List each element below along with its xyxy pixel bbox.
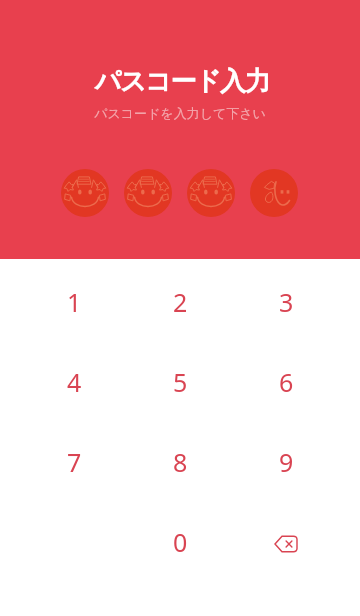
staticText: パスコードを入力して下さい xyxy=(0,105,360,121)
button[interactable]: 1 xyxy=(34,262,114,342)
staticText: 5 xyxy=(173,365,188,399)
staticText: 9 xyxy=(279,445,294,479)
staticText: 3 xyxy=(279,285,294,319)
staticText: パスコード入力 xyxy=(2,65,360,98)
button[interactable]: 6 xyxy=(246,342,326,422)
button[interactable]: Delete xyxy=(246,502,326,582)
staticText: 7 xyxy=(67,445,82,479)
button[interactable]: 2 xyxy=(140,262,220,342)
button[interactable]: 4 xyxy=(34,342,114,422)
button[interactable]: 3 xyxy=(246,262,326,342)
button[interactable]: 0 xyxy=(140,502,220,582)
button[interactable]: 7 xyxy=(34,422,114,502)
staticText: 2 xyxy=(173,285,188,319)
button[interactable]: 8 xyxy=(140,422,220,502)
staticText: 8 xyxy=(173,445,188,479)
staticText: 4 xyxy=(67,365,82,399)
button[interactable]: 5 xyxy=(140,342,220,422)
staticText: 1 xyxy=(67,285,82,319)
button[interactable]: 9 xyxy=(246,422,326,502)
staticText: 0 xyxy=(173,525,188,559)
staticText: 6 xyxy=(279,365,294,399)
